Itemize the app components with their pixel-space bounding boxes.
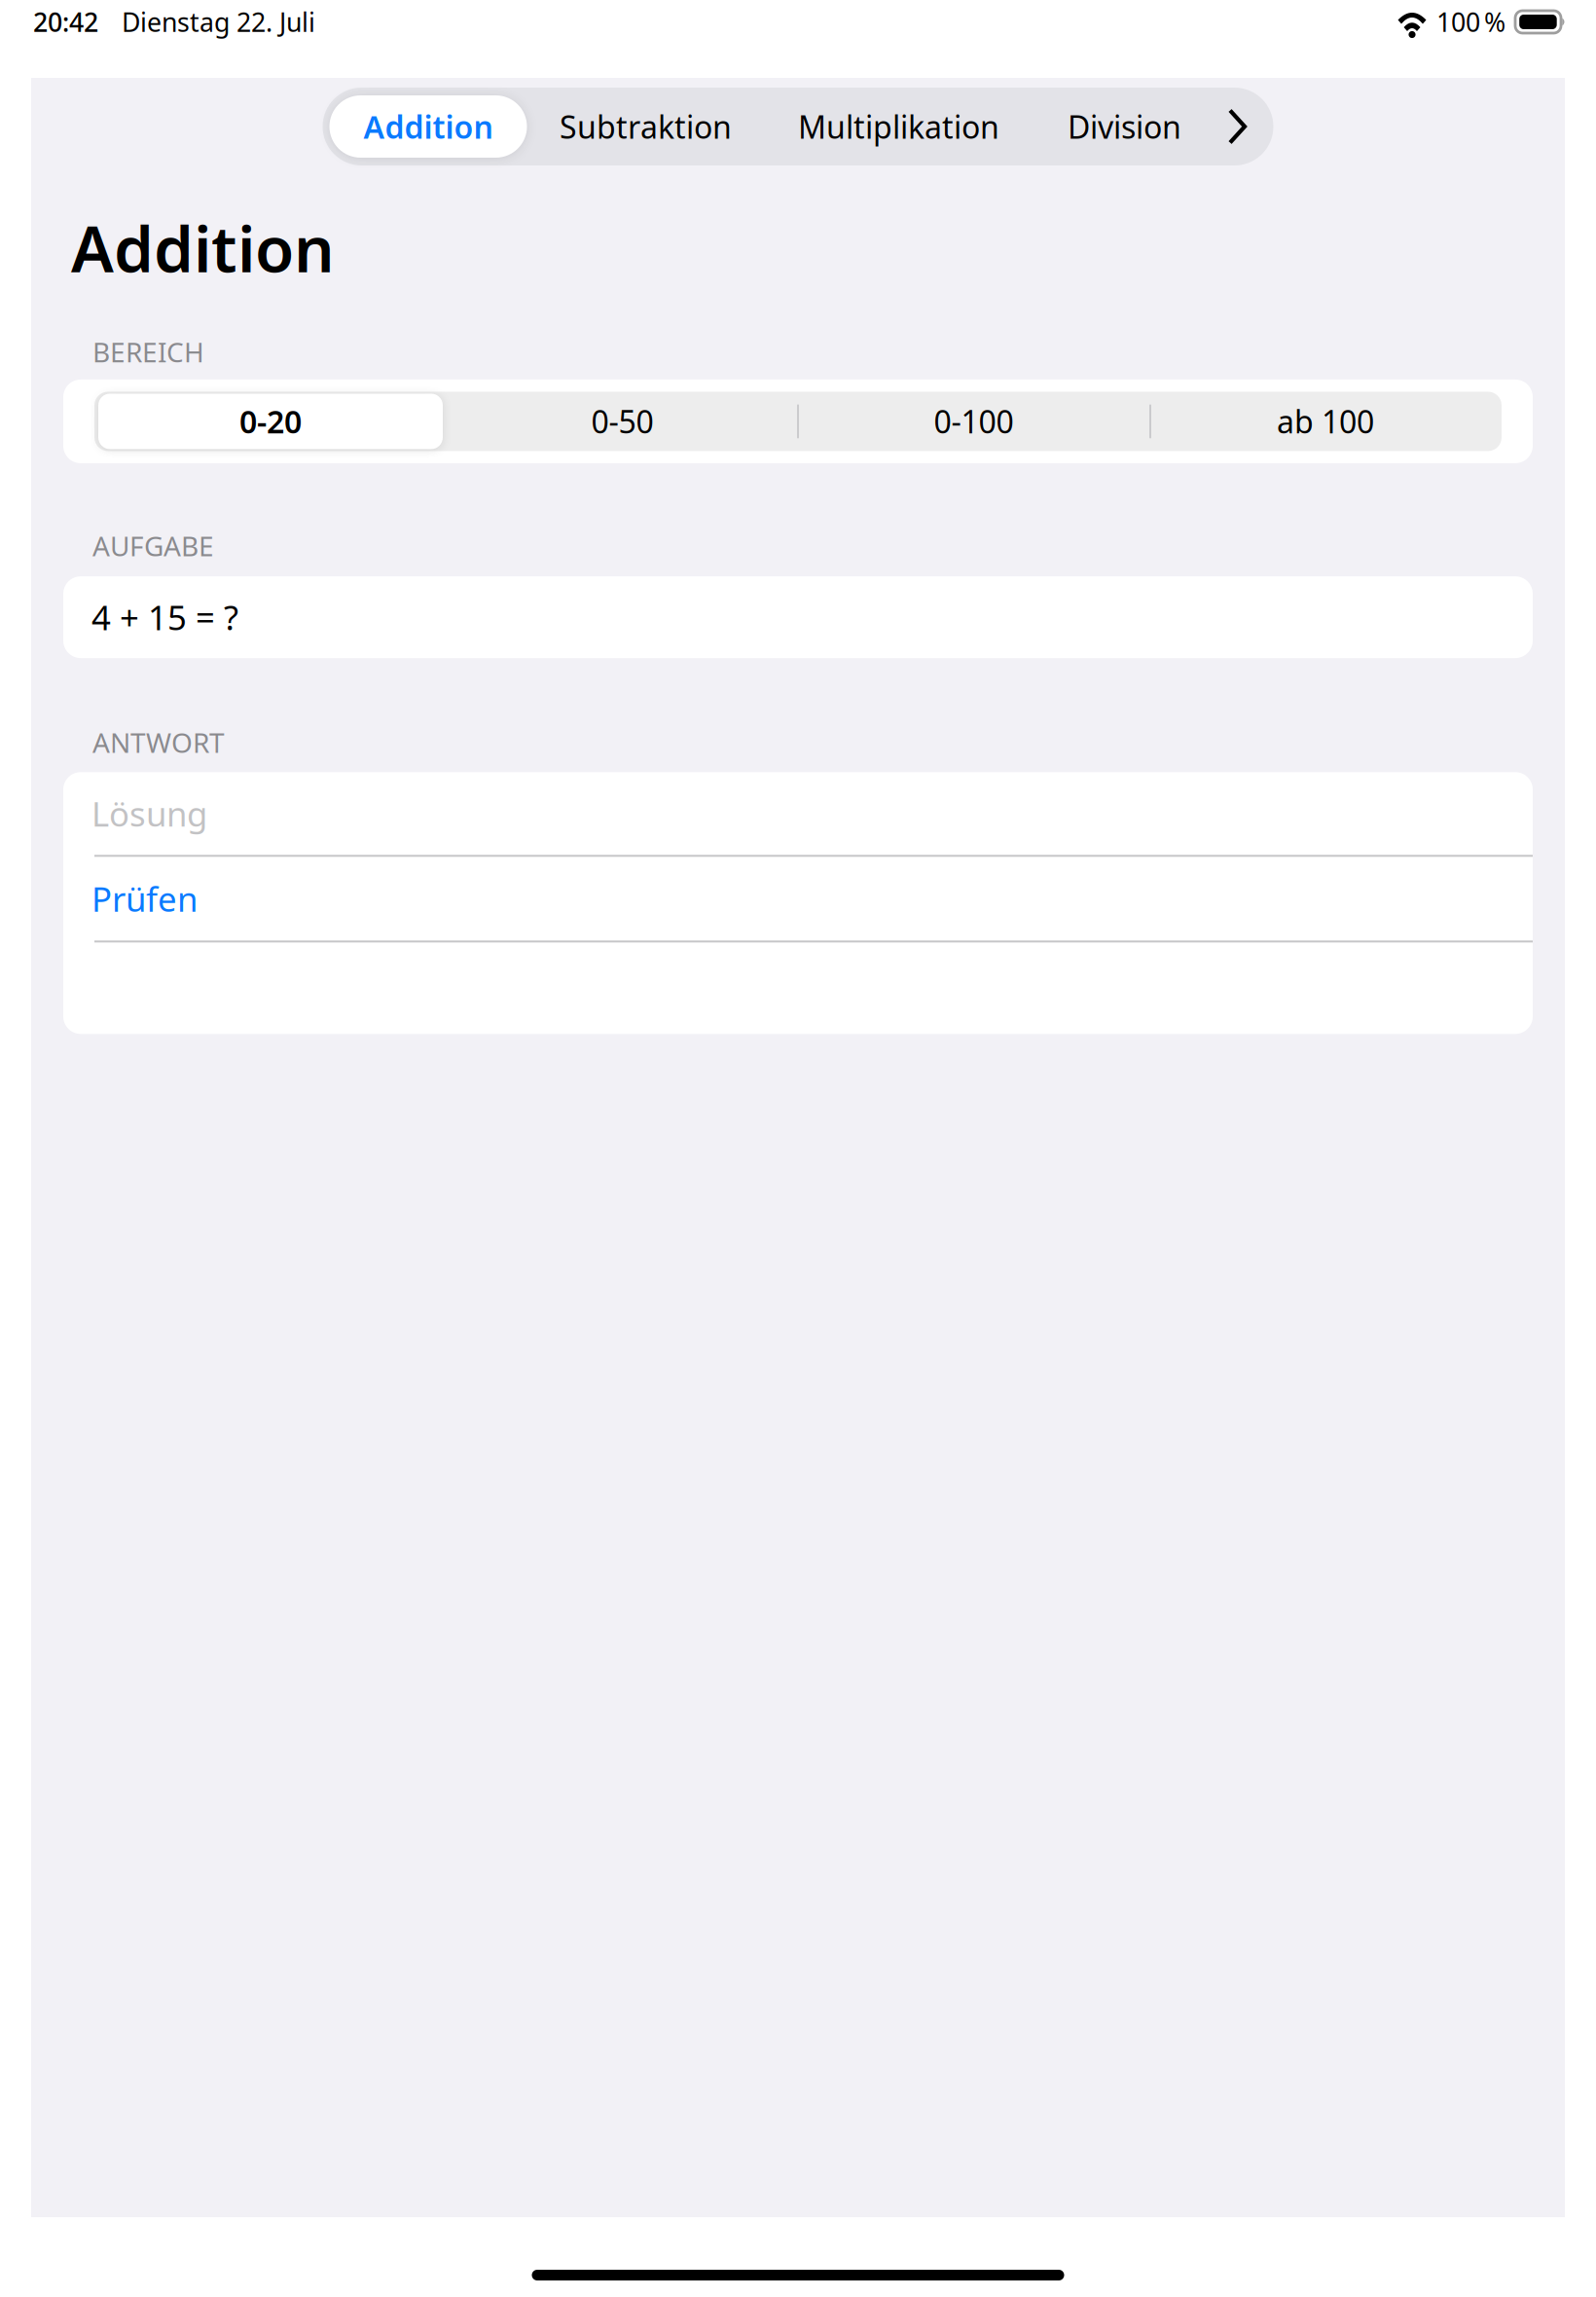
staticText: ab 100 bbox=[1277, 401, 1374, 442]
button[interactable]: Subtraktion bbox=[527, 95, 764, 158]
staticText: 20:42 bbox=[33, 5, 98, 39]
button[interactable]: Weitere Rechenarten bbox=[1216, 95, 1273, 158]
button[interactable]: Addition bbox=[329, 95, 527, 158]
staticText: ANTWORT bbox=[92, 724, 225, 760]
staticText: 4 + 15 = ? bbox=[91, 595, 238, 640]
button[interactable]: Prüfen bbox=[63, 857, 1533, 941]
staticText: Lösung bbox=[91, 791, 207, 836]
button[interactable]: Multiplikation bbox=[764, 95, 1033, 158]
staticText: Multiplikation bbox=[798, 106, 999, 147]
staticText: 0-20 bbox=[239, 401, 302, 442]
staticText: AUFGABE bbox=[92, 527, 214, 564]
staticText: Subtraktion bbox=[560, 106, 732, 147]
button[interactable]: ab 100 bbox=[1149, 392, 1502, 451]
staticText: Addition bbox=[71, 205, 335, 290]
staticText: Addition bbox=[363, 106, 493, 147]
staticText: 100 % bbox=[1436, 5, 1505, 39]
staticText: BEREICH bbox=[92, 334, 204, 370]
staticText: Dienstag 22. Juli bbox=[122, 5, 315, 39]
button[interactable]: Division bbox=[1033, 95, 1216, 158]
button[interactable]: 0-50 bbox=[447, 392, 798, 451]
staticText: Prüfen bbox=[91, 876, 198, 921]
staticText: Division bbox=[1068, 106, 1181, 147]
button[interactable]: 0-20 bbox=[94, 392, 447, 451]
button[interactable]: 0-100 bbox=[798, 392, 1149, 451]
staticText: 0-50 bbox=[591, 401, 653, 442]
staticText: 0-100 bbox=[934, 401, 1014, 442]
button[interactable]: Lösung bbox=[63, 772, 1533, 855]
